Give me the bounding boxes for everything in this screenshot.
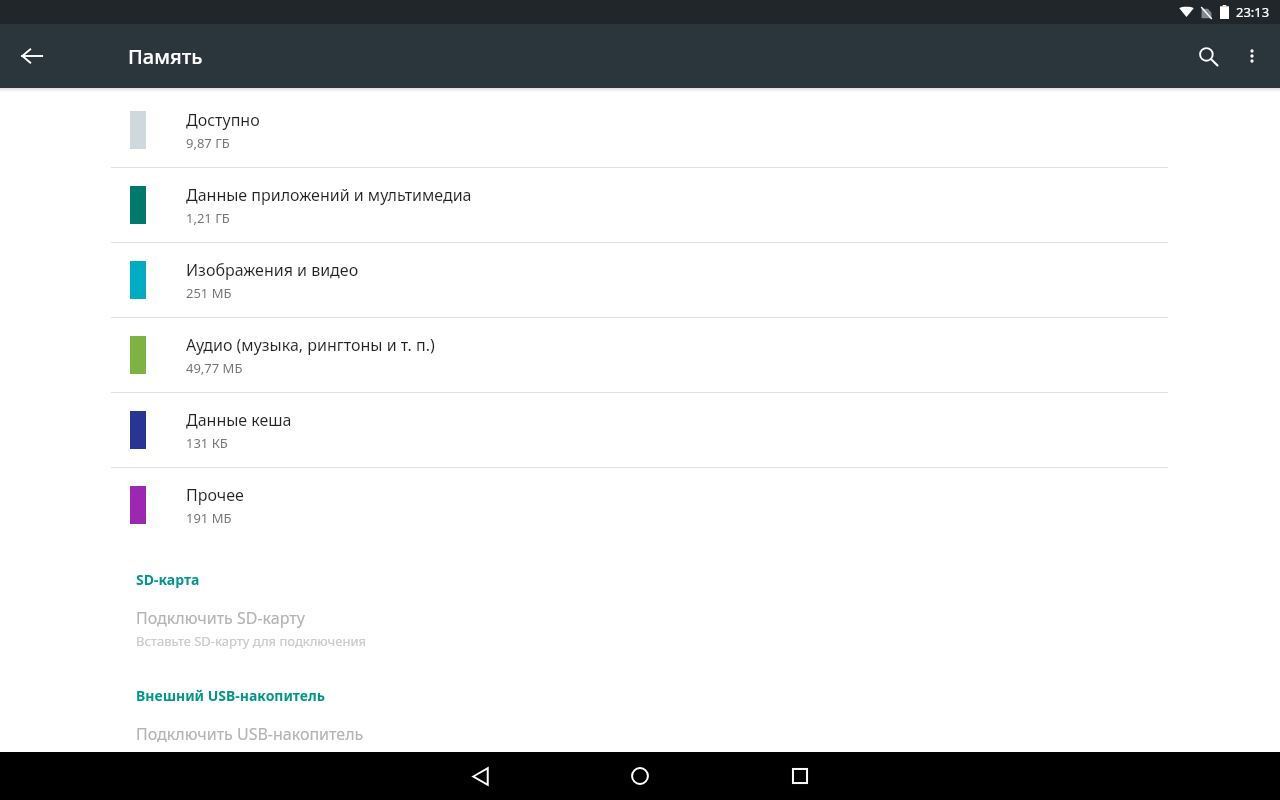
- button[interactable]: Обзор: [764, 752, 836, 800]
- staticText: Память: [128, 43, 203, 70]
- button[interactable]: Данные кеша: [0, 393, 1280, 467]
- button[interactable]: Изображения и видео: [0, 243, 1280, 317]
- staticText: SD-карта: [136, 570, 200, 589]
- staticText: Подключить USB-накопитель: [136, 723, 364, 742]
- staticText: Данные кеша: [186, 409, 292, 431]
- staticText: Изображения и видео: [186, 259, 359, 281]
- button[interactable]: Подключить SD-карту: [0, 595, 1280, 660]
- staticText: Аудио (музыка, рингтоны и т. п.): [186, 334, 435, 356]
- staticText: Прочее: [186, 484, 244, 506]
- button[interactable]: Поиск: [1184, 32, 1232, 80]
- staticText: 49,77 МБ: [186, 359, 243, 377]
- button[interactable]: Подключить USB-накопитель: [0, 711, 1280, 752]
- button[interactable]: Главный экран: [604, 752, 676, 800]
- button[interactable]: Аудио (музыка, рингтоны и т. п.): [0, 318, 1280, 392]
- staticText: Доступно: [186, 109, 260, 131]
- staticText: 191 МБ: [186, 509, 232, 527]
- button[interactable]: Данные приложений и мультимедиа: [0, 168, 1280, 242]
- staticText: 131 КБ: [186, 434, 228, 452]
- button[interactable]: Назад: [8, 32, 56, 80]
- staticText: Внешний USB-накопитель: [136, 686, 325, 705]
- staticText: 1,21 ГБ: [186, 209, 230, 227]
- staticText: 9,87 ГБ: [186, 134, 230, 152]
- staticText: Подключить SD-карту: [136, 607, 305, 629]
- staticText: Вставьте SD-карту для подключения: [136, 632, 366, 650]
- staticText: 23:13: [1236, 3, 1270, 21]
- button[interactable]: Назад: [444, 752, 516, 800]
- button[interactable]: Ещё: [1232, 36, 1272, 76]
- staticText: Данные приложений и мультимедиа: [186, 184, 472, 206]
- staticText: 251 МБ: [186, 284, 232, 302]
- button[interactable]: Прочее: [0, 468, 1280, 542]
- button[interactable]: Доступно: [0, 93, 1280, 167]
